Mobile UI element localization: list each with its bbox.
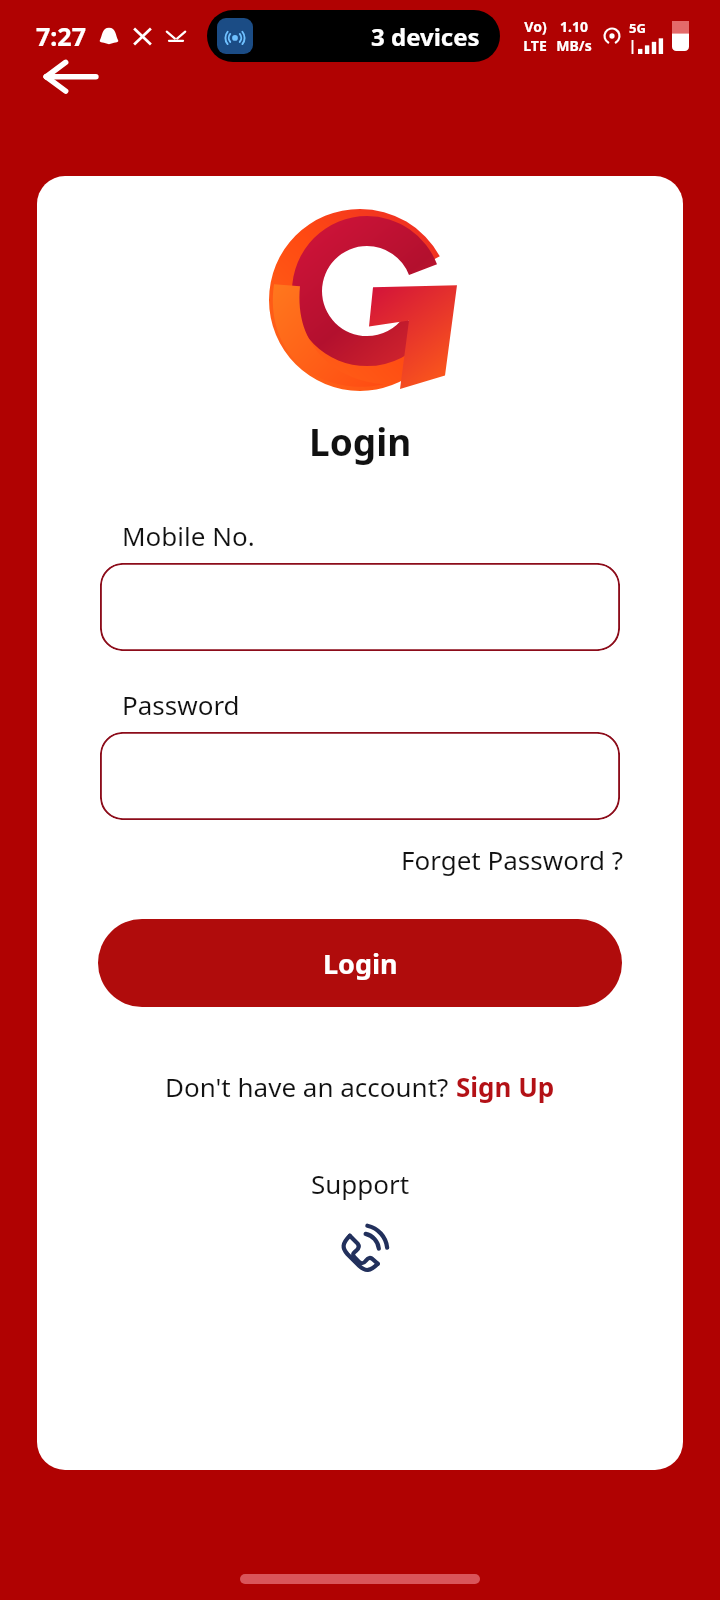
staticText: 7:27 xyxy=(36,19,86,53)
button[interactable]: Sign Up xyxy=(456,1069,555,1104)
staticText: 5G xyxy=(629,19,646,37)
staticText: LTE xyxy=(523,36,547,55)
other: Call support xyxy=(333,1219,389,1275)
button[interactable]: Forget Password ? xyxy=(401,842,624,877)
staticText: Support xyxy=(311,1166,410,1201)
button[interactable] xyxy=(100,563,620,651)
button[interactable] xyxy=(100,732,620,820)
staticText: 3 devices xyxy=(371,20,480,53)
staticText: Don't have an account? xyxy=(165,1069,456,1104)
button[interactable]: Back xyxy=(28,46,112,106)
button[interactable]: Login xyxy=(98,919,622,1007)
staticText: MB/s xyxy=(556,36,592,55)
staticText: Vo) xyxy=(524,17,547,36)
staticText: Mobile No. xyxy=(122,518,255,553)
staticText: Password xyxy=(122,687,240,722)
staticText: Login xyxy=(323,945,398,982)
button[interactable]: Support xyxy=(311,1166,410,1275)
staticText: Sign Up xyxy=(456,1069,555,1104)
staticText: 1.10 xyxy=(560,17,588,36)
staticText: Login xyxy=(309,416,412,466)
staticText: Forget Password ? xyxy=(401,842,624,877)
